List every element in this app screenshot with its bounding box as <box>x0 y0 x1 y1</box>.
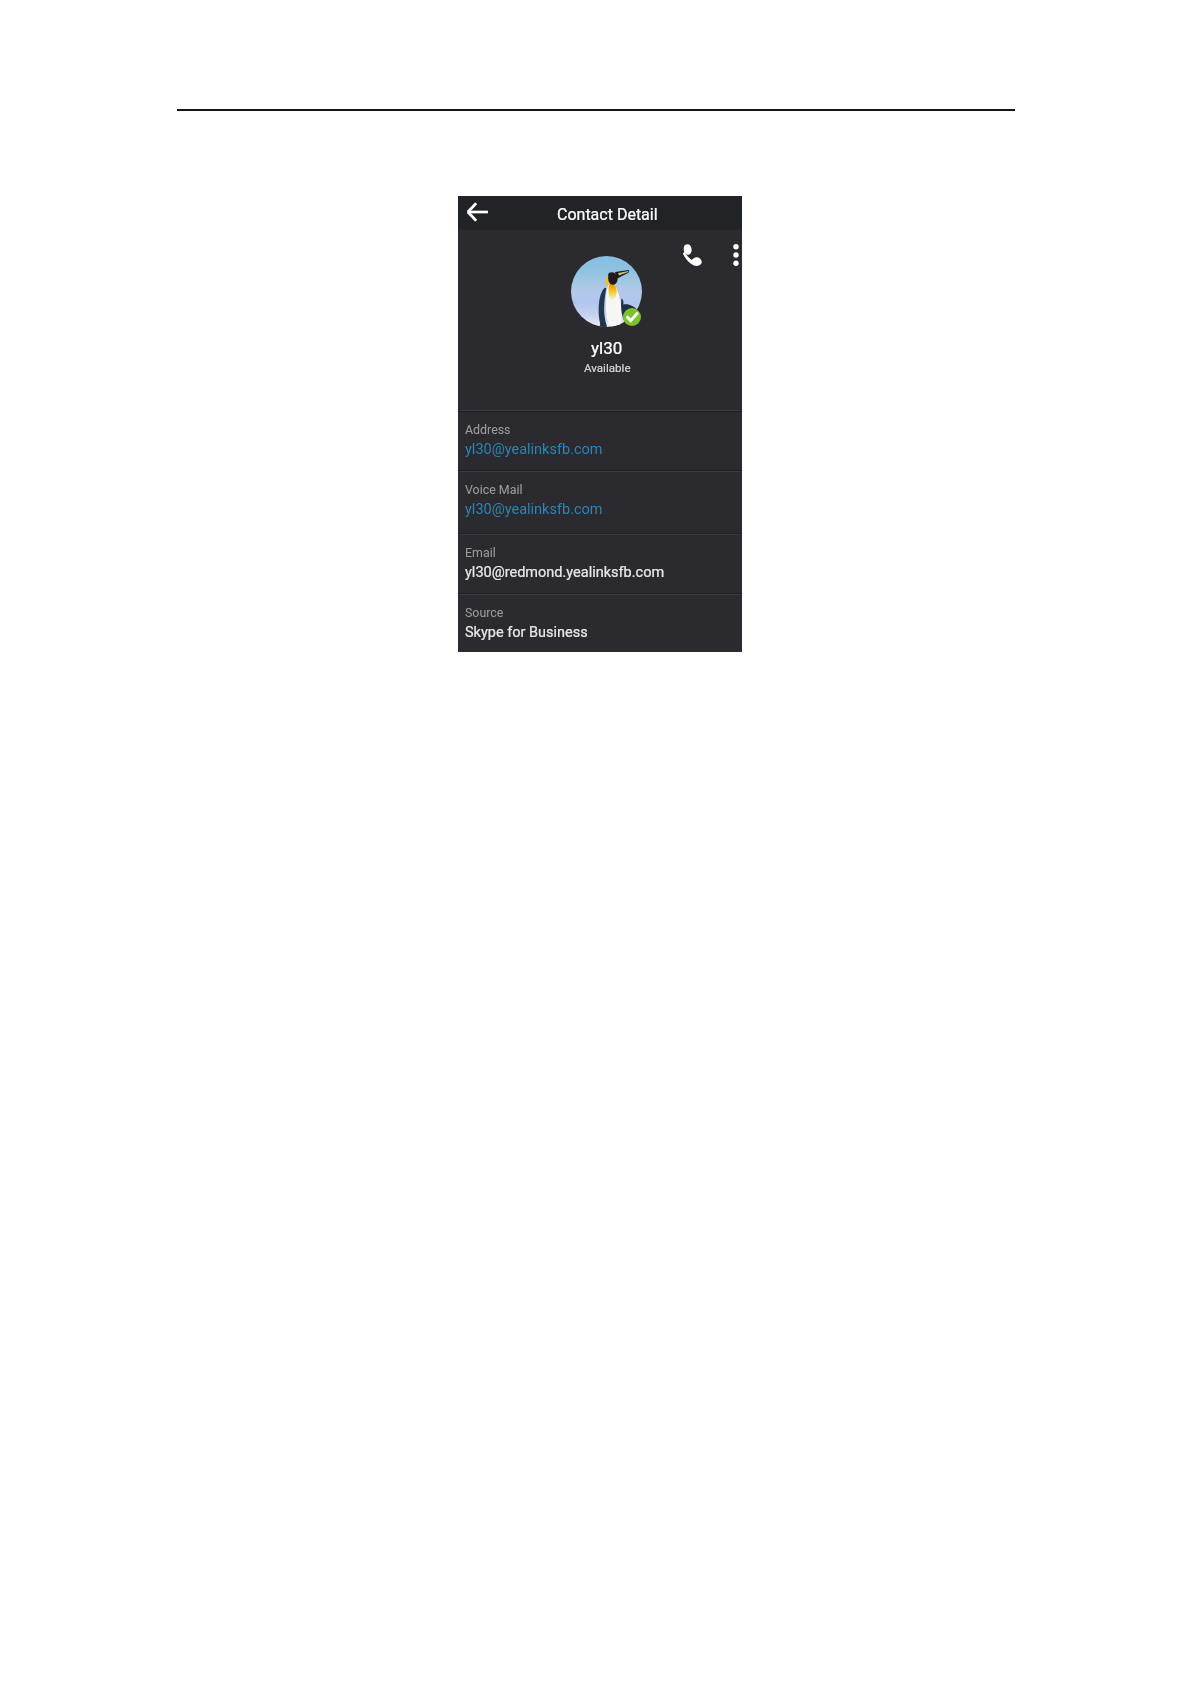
staticText: Address <box>465 422 511 437</box>
button[interactable]: Source <box>458 593 742 652</box>
staticText: yl30@yealinksfb.com <box>465 441 603 458</box>
staticText: Contact Detail <box>557 205 658 224</box>
staticText: Voice Mail <box>465 482 523 497</box>
button[interactable]: Voice Mail <box>458 470 742 533</box>
staticText: yl30@yealinksfb.com <box>465 501 603 518</box>
button[interactable]: More options <box>729 240 743 270</box>
button[interactable]: Email <box>458 533 742 594</box>
button[interactable]: Call <box>682 243 704 267</box>
staticText: Source <box>465 605 504 620</box>
button[interactable]: Address <box>458 410 742 470</box>
staticText: Available <box>584 361 631 375</box>
button[interactable]: Back <box>463 198 492 227</box>
staticText: yl30@redmond.yealinksfb.com <box>465 564 665 581</box>
staticText: yl30 <box>591 338 623 358</box>
staticText: Skype for Business <box>465 624 588 641</box>
staticText: Email <box>465 545 496 560</box>
